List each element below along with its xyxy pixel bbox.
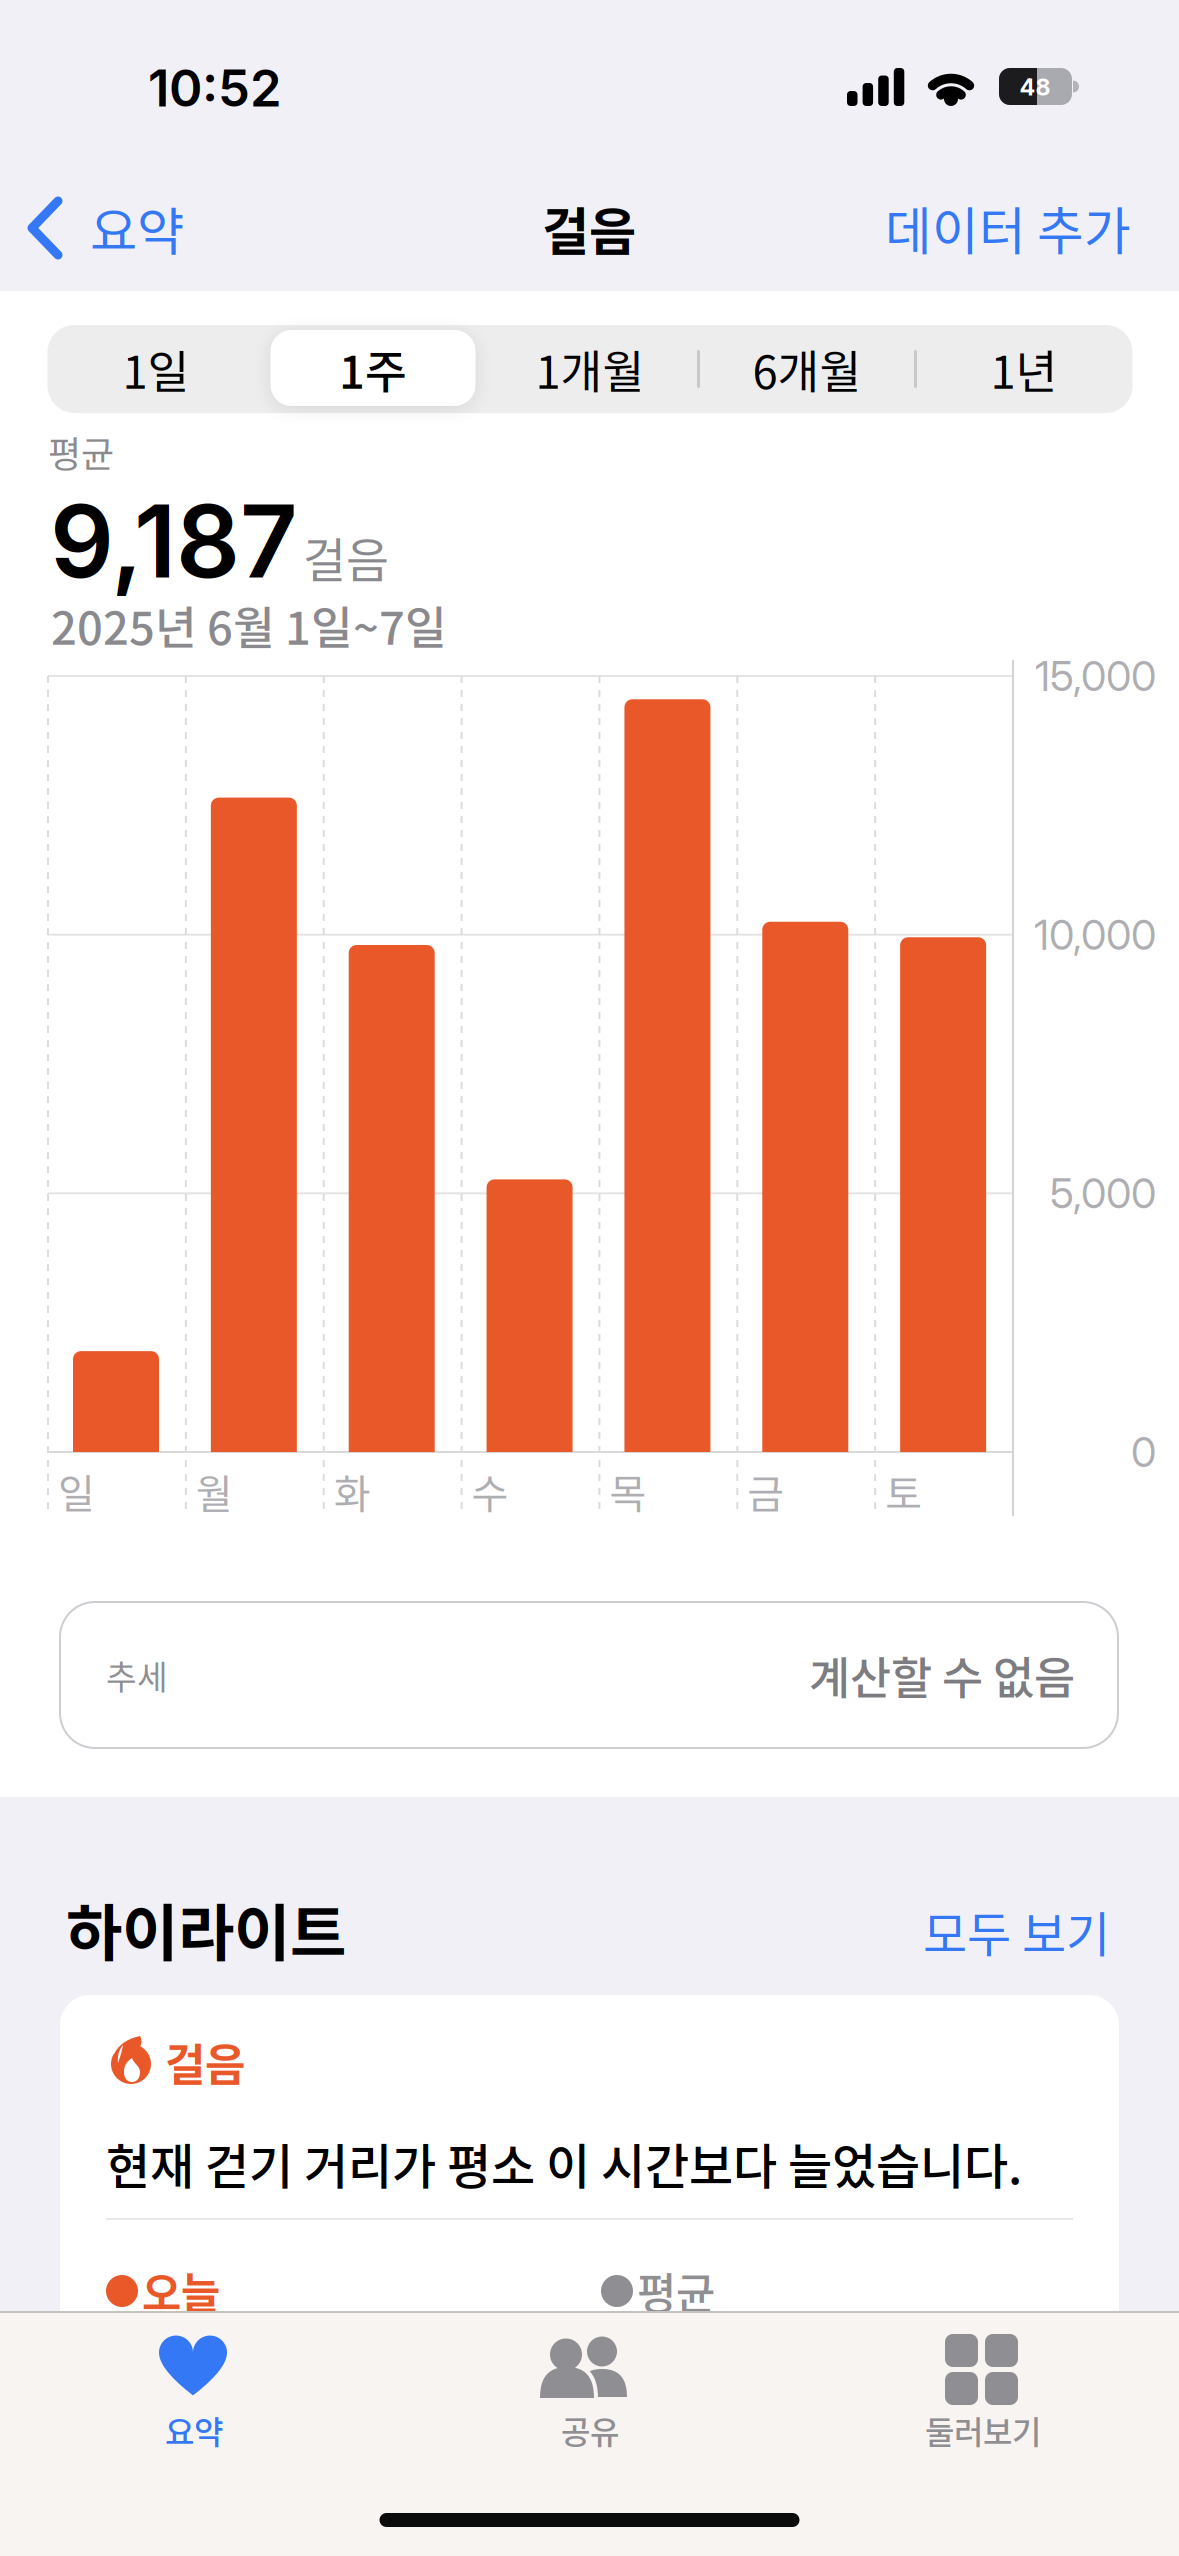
staticText: 평균 [637,2260,715,2322]
staticText: 공유 [561,2407,619,2453]
staticText: 5,000 [1050,1168,1156,1218]
button[interactable]: 6개월 [698,325,915,413]
staticText: 걸음 [303,523,389,591]
staticText: 걸음 [542,191,636,265]
staticText: 1개월 [535,336,644,402]
staticText: 일 [58,1462,95,1520]
button[interactable]: 1일 [47,325,264,413]
staticText: 10:52 [148,57,282,119]
button[interactable]: 1개월 [481,325,698,413]
staticText: 토 [885,1462,922,1520]
staticText: 월 [196,1462,233,1520]
button[interactable]: 요약 [74,2320,314,2450]
staticText: 요약 [90,191,184,265]
staticText: 1일 [122,336,189,402]
staticText: 48 [1019,73,1050,101]
staticText: 현재 걷기 거리가 평소 이 시간보다 늘었습니다. [106,2128,1022,2198]
button[interactable]: 추세 [59,1601,1119,1749]
staticText: 추세 [106,1651,168,1699]
button[interactable]: 둘러보기 [861,2320,1101,2450]
staticText: 목 [609,1462,646,1520]
staticText: 1년 [990,336,1057,402]
staticText: 수 [472,1462,509,1520]
staticText: 15,000 [1035,651,1156,701]
staticText: 2025년 6월 1일~7일 [51,592,447,658]
staticText: 데이터 추가 [885,191,1131,265]
staticText: 계산할 수 없음 [809,1643,1075,1707]
staticText: 평균 [48,426,114,478]
staticText: 9,187 [50,480,298,601]
staticText: 6개월 [752,336,861,402]
button[interactable]: 1주 [264,325,481,413]
staticText: 하이라이트 [66,1885,346,1973]
staticText: 요약 [165,2407,223,2453]
staticText: 1주 [339,336,407,402]
staticText: 걸음 [165,2030,245,2094]
button[interactable]: 걸음 [60,1995,1119,2360]
button[interactable]: 뒤로 [26,188,184,268]
staticText: 0 [1131,1427,1156,1477]
staticText: 둘러보기 [925,2407,1041,2453]
staticText: 모두 보기 [923,1896,1110,1966]
button[interactable]: 모두 보기 [810,1891,1110,1971]
staticText: 화 [334,1462,371,1520]
button[interactable]: 공유 [470,2320,710,2450]
staticText: 오늘 [142,2260,220,2322]
staticText: 10,000 [1034,910,1156,960]
button[interactable]: 데이터 추가 [731,188,1131,268]
button[interactable]: 1년 [915,325,1132,413]
staticText: 금 [747,1462,784,1520]
